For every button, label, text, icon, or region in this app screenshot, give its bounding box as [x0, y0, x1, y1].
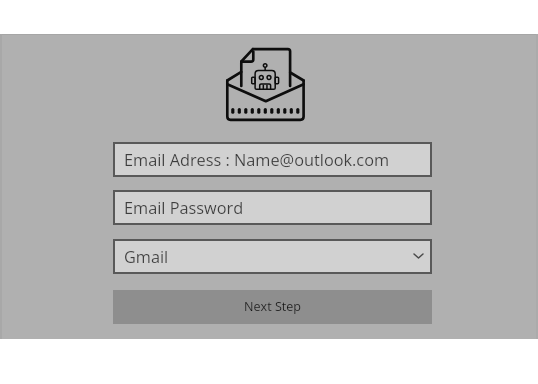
staticText: Gmail: [124, 246, 169, 268]
staticText: Next Step: [244, 298, 302, 315]
staticText: Email Adress : Name@outlook.com: [124, 149, 390, 171]
button[interactable]: Gmail: [113, 239, 432, 274]
button[interactable]: Next Step: [113, 290, 432, 324]
button[interactable]: Email Password: [113, 190, 432, 225]
other: Email robot illustration: [222, 45, 310, 127]
button[interactable]: Email Adress : Name@outlook.com: [113, 142, 432, 177]
staticText: Email Password: [124, 197, 244, 219]
